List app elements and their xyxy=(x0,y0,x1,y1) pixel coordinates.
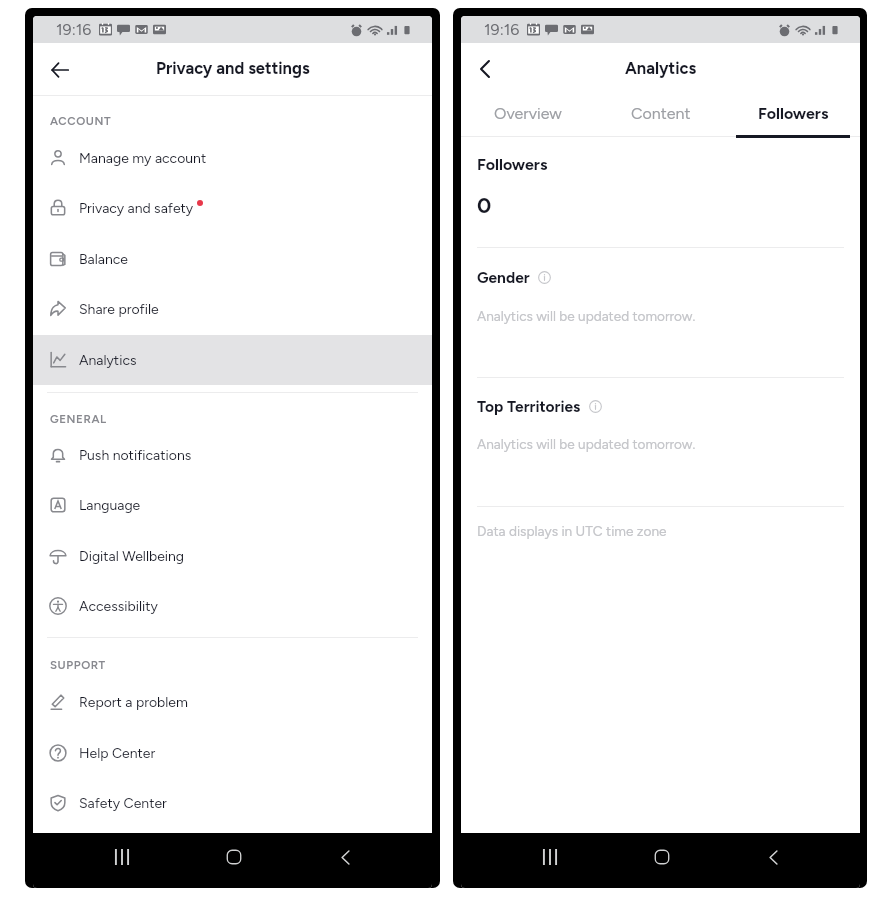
button[interactable]: Share profile xyxy=(33,284,432,334)
button[interactable]: Back xyxy=(39,49,80,90)
button[interactable]: Accessibility xyxy=(33,581,432,631)
button[interactable]: Report a problem xyxy=(33,677,432,727)
staticText: Report a problem xyxy=(79,694,188,711)
staticText: Overview xyxy=(494,104,562,123)
staticText: Followers xyxy=(758,104,829,123)
button[interactable]: Recent apps xyxy=(100,835,144,879)
staticText: 19:16 xyxy=(484,20,520,39)
staticText: Help Center xyxy=(79,745,156,762)
staticText: 0 xyxy=(477,192,492,218)
button[interactable]: Privacy and safety xyxy=(33,183,432,233)
button[interactable]: Home xyxy=(212,835,256,879)
staticText: Safety Center xyxy=(79,795,167,812)
button[interactable]: Safety Center xyxy=(33,778,432,828)
staticText: 19:16 xyxy=(56,20,92,39)
staticText: Analytics will be updated tomorrow. xyxy=(477,308,696,324)
button[interactable]: Digital Wellbeing xyxy=(33,531,432,581)
staticText: Push notifications xyxy=(79,447,192,464)
staticText: Content xyxy=(631,104,691,123)
staticText: Analytics xyxy=(625,58,697,78)
button[interactable]: Balance xyxy=(33,234,432,284)
button[interactable]: Content xyxy=(594,93,727,133)
button[interactable]: Push notifications xyxy=(33,430,432,480)
button[interactable]: Recent apps xyxy=(528,835,572,879)
staticText: Followers xyxy=(477,155,548,174)
staticText: Balance xyxy=(79,251,128,268)
button[interactable]: Followers xyxy=(727,93,860,133)
staticText: Privacy and safety xyxy=(79,200,194,217)
button[interactable]: Analytics xyxy=(33,335,432,385)
staticText: Accessibility xyxy=(79,598,158,615)
staticText: Manage my account xyxy=(79,150,207,167)
button[interactable]: Manage my account xyxy=(33,133,432,183)
button[interactable]: Home xyxy=(640,835,684,879)
staticText: Share profile xyxy=(79,301,159,318)
staticText: SUPPORT xyxy=(50,658,106,672)
staticText: Analytics xyxy=(79,352,137,369)
button[interactable]: Back xyxy=(323,835,367,879)
staticText: Analytics will be updated tomorrow. xyxy=(477,436,696,452)
staticText: Privacy and settings xyxy=(156,58,310,78)
staticText: Language xyxy=(79,497,141,514)
button[interactable]: Overview xyxy=(461,93,594,133)
staticText: ACCOUNT xyxy=(50,114,112,128)
staticText: Data displays in UTC time zone xyxy=(477,523,667,539)
staticText: Digital Wellbeing xyxy=(79,548,185,565)
button[interactable]: Back xyxy=(751,835,795,879)
button[interactable]: Language xyxy=(33,480,432,530)
button[interactable]: Back xyxy=(463,47,507,91)
button[interactable]: Help Center xyxy=(33,728,432,778)
staticText: GENERAL xyxy=(50,412,107,426)
staticText: Gender xyxy=(477,268,530,287)
staticText: Top Territories xyxy=(477,397,581,416)
